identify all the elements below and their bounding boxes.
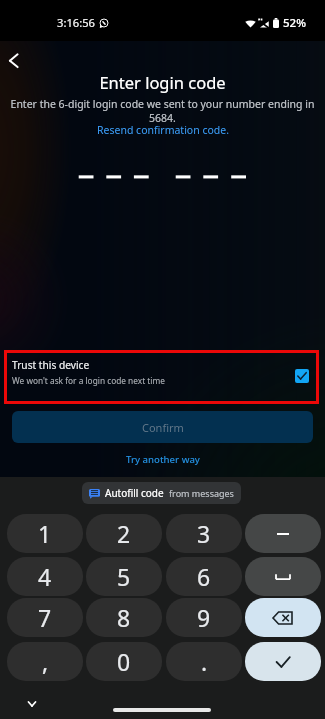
staticText: , xyxy=(42,646,49,677)
button[interactable]: Enter xyxy=(245,642,321,681)
button[interactable] xyxy=(245,514,321,553)
staticText: 6 xyxy=(197,561,211,592)
button[interactable]: Back xyxy=(0,47,28,75)
staticText: 7 xyxy=(38,602,52,633)
button[interactable]: Hide keyboard xyxy=(22,694,42,714)
staticText: 3 xyxy=(197,518,211,549)
staticText: Enter login code xyxy=(0,71,325,93)
staticText: Autofill code xyxy=(105,486,164,500)
staticText: from messages xyxy=(169,487,234,499)
button[interactable]: Trust this device xyxy=(7,353,316,401)
button[interactable] xyxy=(245,557,321,596)
button[interactable]: Autofill code xyxy=(82,482,241,504)
button[interactable]: Backspace xyxy=(245,598,321,637)
button[interactable]: 3 xyxy=(166,514,242,553)
staticText: 4 xyxy=(38,561,52,592)
staticText: Try another way xyxy=(126,453,200,466)
button[interactable]: 4 xyxy=(7,557,83,596)
staticText: . xyxy=(201,646,208,677)
button[interactable]: 9 xyxy=(166,598,242,637)
staticText: 0 xyxy=(117,646,131,677)
staticText: Resend confirmation code. xyxy=(97,123,229,137)
staticText: 3:16:56 xyxy=(57,15,95,30)
button[interactable]: 8 xyxy=(86,598,162,637)
button[interactable]: Try another way xyxy=(116,448,210,471)
staticText: Trust this device xyxy=(12,358,90,372)
staticText: Enter the 6-digit login code we sent to … xyxy=(7,97,318,125)
button[interactable]: 1 xyxy=(7,514,83,553)
staticText: 5 xyxy=(117,561,131,592)
staticText: Confirm xyxy=(142,420,184,435)
button[interactable]: Resend confirmation code. xyxy=(97,123,229,137)
button[interactable]: Confirm xyxy=(12,411,313,443)
staticText: 2 xyxy=(117,518,131,549)
button[interactable]: . xyxy=(166,642,242,681)
button[interactable]: 0 xyxy=(86,642,162,681)
button[interactable]: 6 xyxy=(166,557,242,596)
button[interactable]: , xyxy=(7,642,83,681)
staticText: 8 xyxy=(117,602,131,633)
button[interactable]: 2 xyxy=(86,514,162,553)
staticText: 9 xyxy=(197,602,211,633)
staticText: We won't ask for a login code next time xyxy=(12,375,165,386)
button[interactable]: 7 xyxy=(7,598,83,637)
button[interactable]: 5 xyxy=(86,557,162,596)
staticText: 1 xyxy=(38,518,52,549)
staticText: 52% xyxy=(283,15,306,31)
